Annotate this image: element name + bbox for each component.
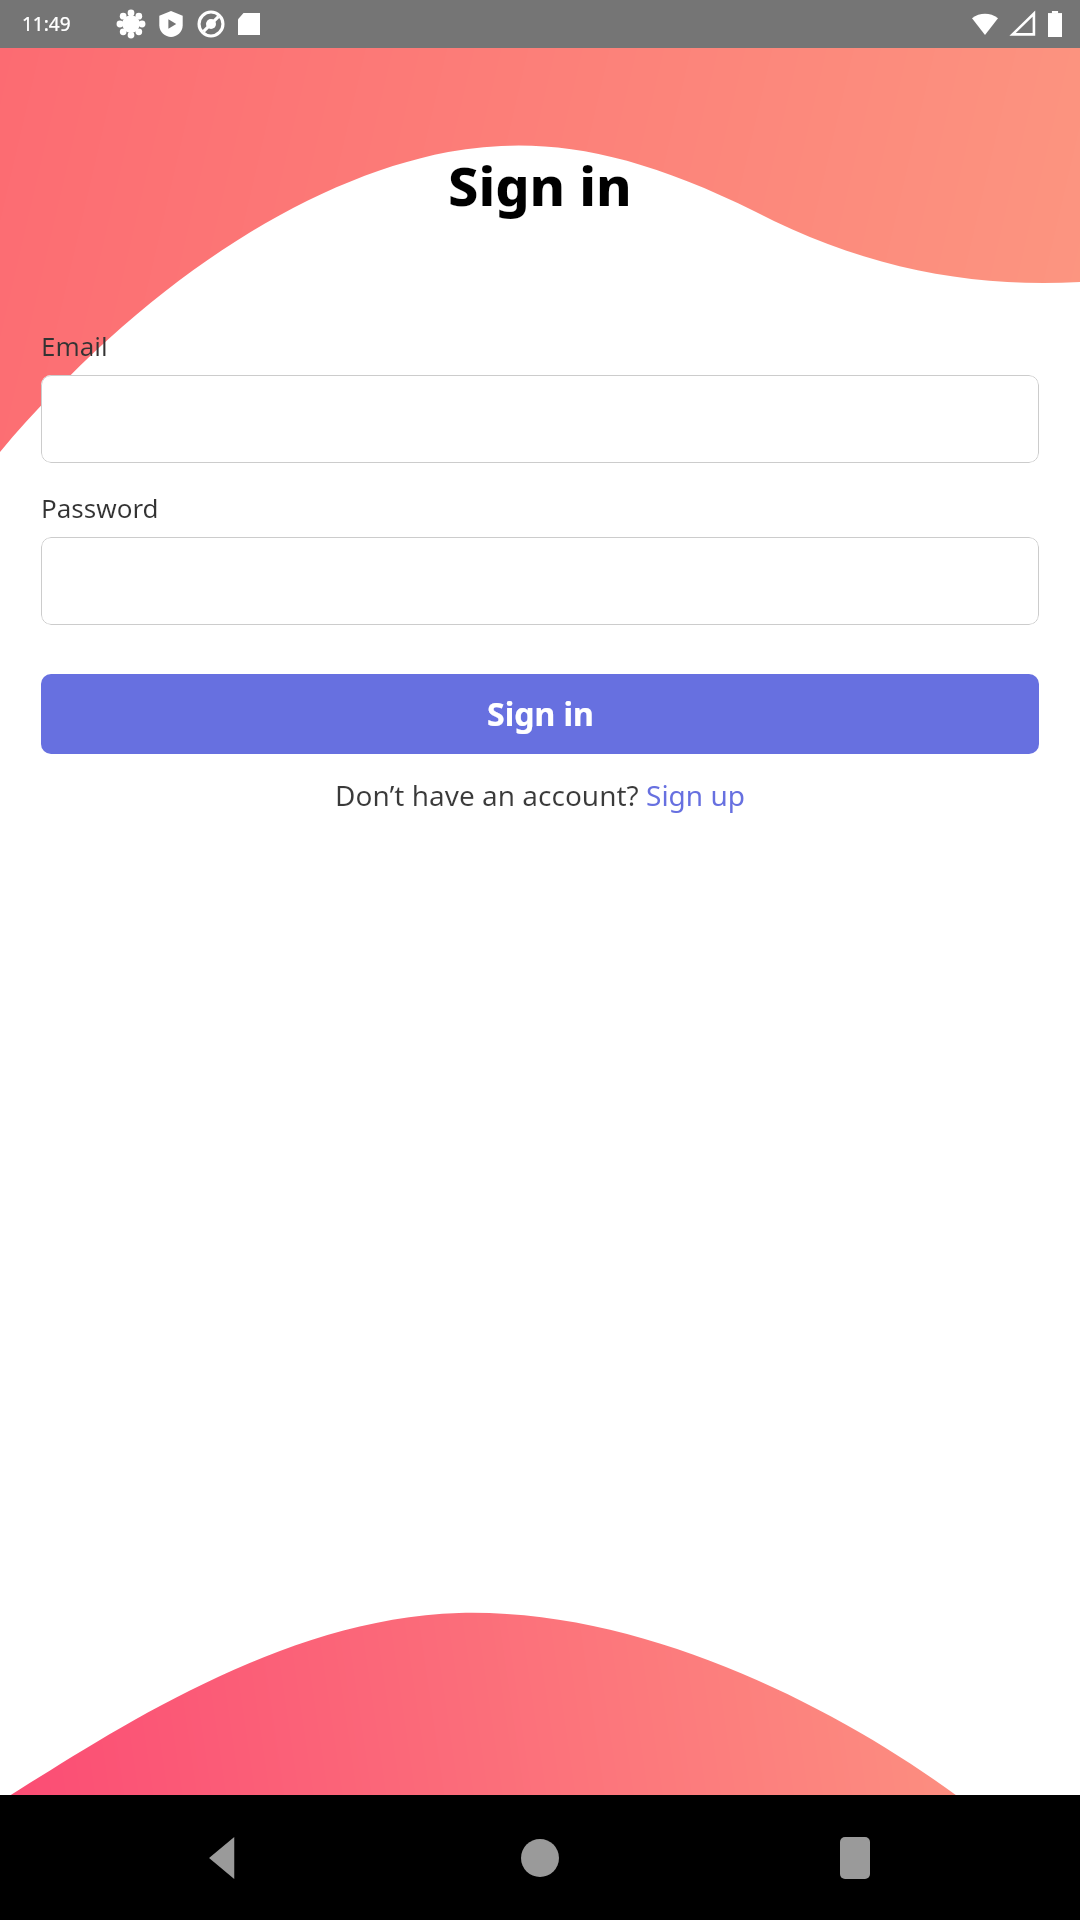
staticText: Sign in xyxy=(487,692,594,736)
button[interactable]: Back xyxy=(178,1811,272,1905)
staticText: 11:49 xyxy=(22,11,71,37)
button[interactable]: Don’t have an account? Sign up xyxy=(335,776,745,814)
other: SD card xyxy=(238,13,260,35)
staticText: Email xyxy=(41,328,108,363)
button[interactable]: Home xyxy=(493,1811,587,1905)
button[interactable]: Sign in xyxy=(41,674,1039,754)
staticText: Sign in xyxy=(448,148,632,222)
staticText: Password xyxy=(41,490,159,525)
button[interactable]: Text field xyxy=(41,375,1039,463)
other: Wi-Fi xyxy=(972,11,998,37)
other: Battery xyxy=(1048,11,1062,37)
button[interactable]: Text field xyxy=(41,537,1039,625)
other: Play Protect xyxy=(158,11,184,37)
other: Mobile signal xyxy=(1010,11,1036,37)
staticText: Don’t have an account? Sign up xyxy=(335,776,745,814)
button[interactable]: Recent apps xyxy=(808,1811,902,1905)
other: Settings xyxy=(118,11,144,37)
other: Do not disturb xyxy=(198,11,224,37)
